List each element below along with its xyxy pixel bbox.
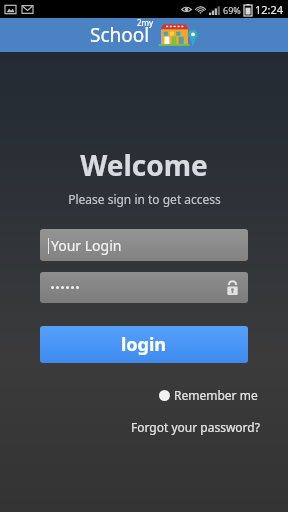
staticText: School <box>90 22 150 48</box>
staticText: Please sign in to get access <box>68 191 221 207</box>
button[interactable]: Remember me <box>157 385 260 405</box>
staticText: Forgot your password? <box>131 419 260 435</box>
staticText: 69% <box>223 4 241 16</box>
staticText: Your Login <box>51 236 122 255</box>
staticText: 2my <box>137 17 154 28</box>
staticText: 12:24 <box>255 2 284 17</box>
button[interactable]: login <box>40 326 248 363</box>
staticText: login <box>121 332 167 357</box>
button[interactable]: Your Login <box>40 229 248 261</box>
staticText: Welcome <box>80 146 208 184</box>
staticText: Remember me <box>174 387 258 403</box>
button[interactable]: Password locked <box>40 272 248 303</box>
other: Password locked <box>226 280 239 296</box>
button[interactable]: Forgot your password? <box>129 417 262 437</box>
